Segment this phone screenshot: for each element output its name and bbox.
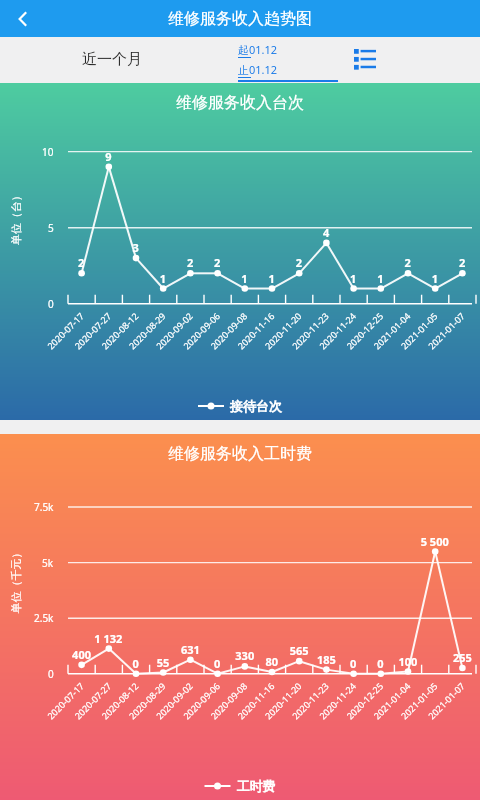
button[interactable] [0, 434, 480, 800]
staticText: 维修服务收入趋势图 [168, 9, 312, 29]
staticText: 起01.12 [238, 42, 278, 57]
button[interactable]: 起01.12 [238, 42, 278, 78]
staticText: 止01.12 [238, 62, 278, 77]
button[interactable]: List view [348, 43, 382, 77]
button[interactable]: Back [0, 0, 46, 37]
button[interactable] [0, 83, 480, 420]
button[interactable]: 近一个月 [82, 50, 142, 69]
